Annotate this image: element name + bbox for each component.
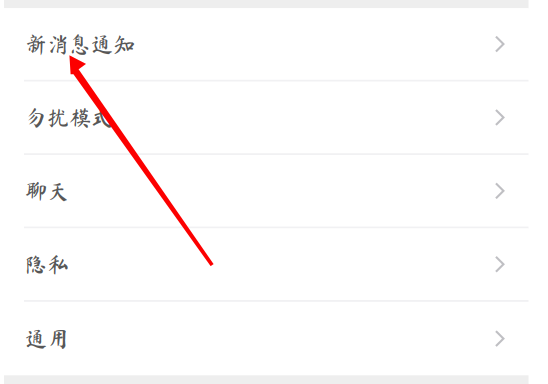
staticText: 新消息通知 [25,33,135,55]
staticText: 勿扰模式 [25,106,113,128]
staticText: 通用 [25,328,69,350]
button[interactable]: 隐私 [4,228,528,302]
button[interactable]: 新消息通知 [4,8,528,82]
staticText: 隐私 [25,253,69,275]
button[interactable]: 勿扰模式 [4,82,528,155]
button[interactable]: 聊天 [4,155,528,228]
button[interactable]: 通用 [4,302,528,375]
staticText: 聊天 [25,180,69,202]
